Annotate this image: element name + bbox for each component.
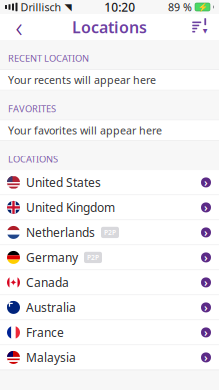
staticText: › [204, 175, 208, 189]
staticText: Malaysia [26, 349, 76, 365]
button[interactable]: United States [0, 170, 219, 195]
button[interactable]: Malaysia [0, 345, 219, 370]
staticText: RECENT LOCATION [8, 52, 89, 64]
button[interactable]: United Kingdom [0, 195, 219, 220]
staticText: › [204, 275, 208, 289]
staticText: ◥ [64, 2, 71, 12]
button[interactable]: Germany [0, 245, 219, 270]
staticText: Your recents will appear here [8, 73, 156, 87]
staticText: Locations [72, 16, 147, 38]
staticText: Netherlands [26, 224, 95, 240]
staticText: ‹ [15, 9, 22, 45]
staticText: › [204, 225, 208, 239]
button[interactable]: Sort [187, 14, 213, 40]
staticText: United Kingdom [26, 199, 115, 215]
staticText: › [204, 200, 208, 214]
staticText: P2P [104, 228, 116, 237]
staticText: ✦ [9, 277, 17, 288]
staticText: FAVORITES [8, 102, 56, 115]
staticText: Drillisch [20, 0, 61, 14]
button[interactable]: France [0, 320, 219, 345]
staticText: Germany [26, 249, 78, 265]
staticText: 10:20 [104, 0, 135, 15]
staticText: LOCATIONS [8, 153, 58, 165]
staticText: United States [26, 174, 101, 190]
staticText: Your favorites will appear here [8, 123, 162, 137]
button[interactable]: ✦ [0, 295, 219, 320]
staticText: France [26, 324, 64, 340]
staticText: › [204, 325, 208, 339]
staticText: P2P [87, 253, 99, 262]
staticText: › [204, 350, 208, 364]
staticText: › [204, 250, 208, 264]
staticText: ⚡ [197, 2, 207, 11]
staticText: › [204, 300, 208, 314]
staticText: ▾ [203, 25, 208, 36]
button[interactable]: Back [6, 14, 32, 40]
button[interactable]: ✦ [0, 270, 219, 295]
button[interactable]: Netherlands [0, 220, 219, 245]
staticText: 89 % [168, 0, 192, 14]
staticText: Canada [26, 274, 69, 290]
staticText: Australia [26, 299, 76, 315]
